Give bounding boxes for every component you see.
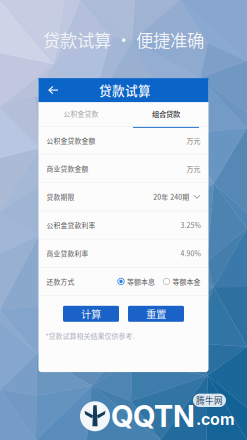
staticText: 贷款试算 · 便捷准确 (43, 27, 204, 52)
staticText: 万元 (186, 135, 200, 145)
staticText: 3.25% (180, 220, 200, 230)
staticText: 公积金贷款利率 (46, 220, 95, 230)
button[interactable]: Back (41, 79, 65, 101)
staticText: 重置 (146, 306, 166, 321)
staticText: 腾牛网 (196, 394, 223, 406)
staticText: 贷款期限 (46, 192, 74, 202)
staticText: 计算 (81, 306, 101, 321)
button[interactable]: 组合贷款 (123, 102, 208, 126)
staticText: 等额本息 (127, 276, 155, 286)
staticText: QQTN (111, 398, 195, 434)
staticText: 还款方式 (46, 276, 74, 286)
button[interactable]: 计算 (63, 306, 119, 322)
staticText: 组合贷款 (152, 108, 180, 119)
button[interactable]: 重置 (128, 306, 184, 322)
staticText: 贷款试算 (99, 81, 151, 99)
staticText: 4.90% (180, 248, 200, 258)
staticText: 万元 (186, 164, 200, 174)
staticText: 商业贷款金额 (46, 164, 88, 173)
staticText: 商业贷款利率 (46, 248, 88, 258)
staticText: 20年 240期 (153, 192, 189, 202)
staticText: 公积金贷款 (63, 109, 98, 118)
button[interactable]: 公积金贷款 (38, 102, 123, 126)
staticText: *贷款试算相关结果仅供参考. (45, 331, 134, 341)
staticText: .com (196, 410, 235, 429)
staticText: 公积金贷款金额 (46, 135, 95, 145)
staticText: 等额本金 (172, 276, 200, 286)
